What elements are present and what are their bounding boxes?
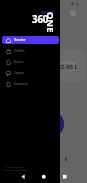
staticText: 360: [32, 13, 49, 26]
staticText: Total Portfolio Value: [51, 61, 76, 65]
staticText: Documents: [60, 161, 72, 164]
button[interactable]: Documents: [2, 80, 59, 88]
staticText: © 360 ONE ASSET: [6, 166, 25, 169]
staticText: Updates: [14, 71, 25, 75]
button[interactable]: Portfolio: [2, 47, 59, 55]
staticText: Documents: [14, 82, 28, 86]
staticText: ONE: [44, 12, 57, 33]
staticText: asset: [41, 9, 54, 15]
staticText: MANAGEMENT LIMITED: [3, 169, 28, 172]
staticText: Portfolio: [14, 49, 25, 53]
staticText: ₹32.95 L: [54, 63, 78, 71]
button[interactable]: Overview: [2, 36, 59, 44]
button[interactable]: Updates: [2, 69, 59, 77]
staticText: Reports: [14, 60, 24, 64]
staticText: Overview: [14, 38, 26, 42]
button[interactable]: Reports: [2, 58, 59, 66]
